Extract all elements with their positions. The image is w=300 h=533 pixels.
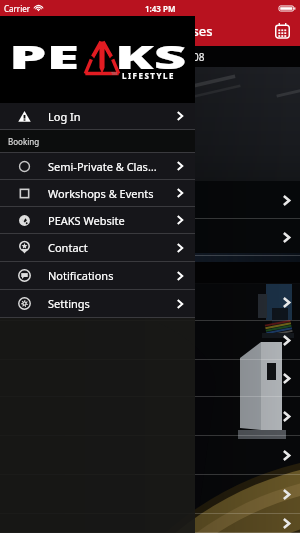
staticText: Notifications [48, 268, 165, 283]
button[interactable] [0, 436, 300, 475]
staticText: PEAKS Website [48, 213, 165, 228]
staticText: 1:43 PM [145, 3, 176, 14]
button[interactable]: Contact [0, 234, 195, 261]
staticText: Carrier [4, 3, 31, 14]
staticText: KS [115, 36, 188, 78]
button[interactable] [0, 475, 300, 514]
button[interactable]: Log In [0, 103, 195, 129]
staticText: Booking [8, 136, 40, 147]
button[interactable]: Notifications [0, 262, 195, 289]
staticText: Classes [167, 22, 213, 40]
staticText: Log In [48, 109, 165, 124]
button[interactable]: Workshops & Events [0, 180, 195, 206]
button[interactable] [0, 219, 300, 256]
button[interactable] [0, 181, 300, 219]
staticText: 1:43 PM [145, 3, 176, 14]
button[interactable]: Semi-Private & Clas… [0, 153, 195, 179]
button[interactable] [0, 514, 300, 533]
staticText: Friday, May 09 [122, 266, 190, 280]
staticText: Settings [48, 296, 165, 311]
staticText: Carrier [4, 3, 31, 14]
staticText: Semi-Private & Clas… [48, 159, 165, 174]
button[interactable] [0, 360, 300, 397]
button[interactable] [0, 321, 300, 360]
staticText: Contact [48, 240, 165, 255]
button[interactable]: Settings [0, 290, 195, 317]
button[interactable] [0, 397, 300, 436]
button[interactable]: PEAKS Website [0, 207, 195, 233]
staticText: Thursday, May 08 [122, 50, 205, 64]
staticText: TM [111, 71, 117, 76]
staticText: Workshops & Events [48, 186, 165, 201]
staticText: PE [9, 36, 80, 78]
button[interactable] [0, 283, 300, 321]
staticText: LIFESTYLE [122, 70, 175, 81]
button[interactable]: Calendar [270, 19, 294, 43]
